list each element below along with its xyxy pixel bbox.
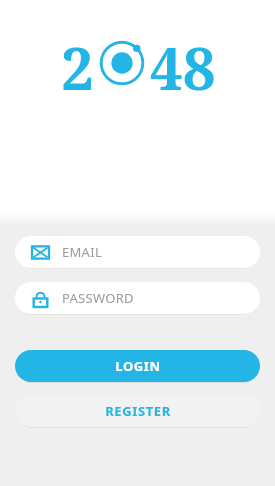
staticText: EMAIL [62,243,103,261]
staticText: 2 [61,28,94,98]
staticText: 48 [150,28,216,98]
button[interactable]: Password [15,282,260,314]
staticText: LOGIN [115,357,161,375]
other: Email [32,244,49,261]
button[interactable]: LOGIN [15,350,260,382]
staticText: PASSWORD [62,289,134,307]
staticText: REGISTER [105,402,171,420]
button[interactable]: Email [15,236,260,268]
other: Password [32,290,49,307]
button[interactable]: REGISTER [15,395,260,427]
